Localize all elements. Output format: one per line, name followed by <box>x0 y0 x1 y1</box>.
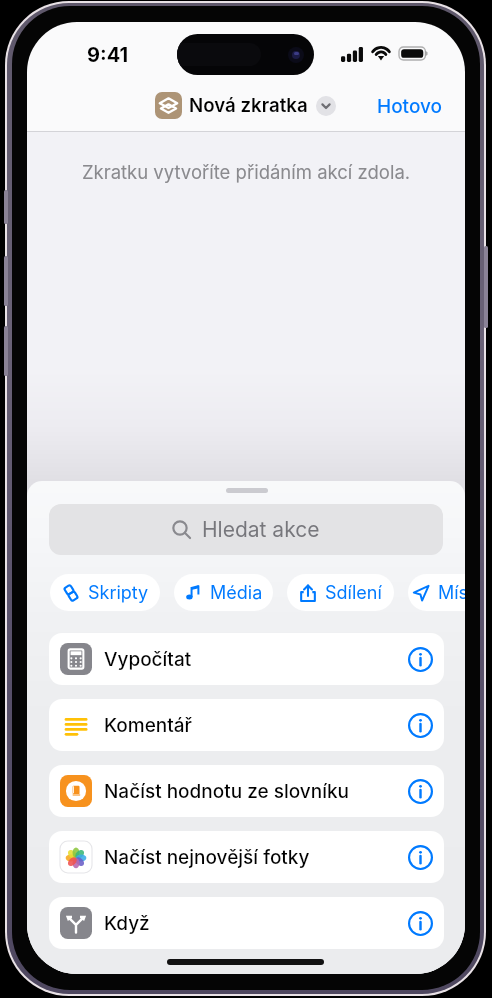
button[interactable]: Možnosti zkratky <box>316 96 336 116</box>
staticText: Sdílení <box>325 582 382 604</box>
staticText: Skripty <box>88 582 149 604</box>
button[interactable]: Vypočítat <box>49 633 444 685</box>
button[interactable]: Informace <box>400 705 440 745</box>
staticText: 9:41 <box>87 43 129 67</box>
staticText: Když <box>104 912 150 935</box>
button[interactable]: Informace <box>400 837 440 877</box>
button[interactable]: Informace <box>400 771 440 811</box>
button[interactable]: Načíst hodnotu ze slovníku <box>49 765 444 817</box>
button[interactable]: Komentář <box>49 699 444 751</box>
button[interactable]: Média <box>174 574 273 611</box>
staticText: Média <box>210 582 263 604</box>
staticText: Místa <box>438 582 465 604</box>
staticText: Nová zkratka <box>189 94 308 117</box>
button[interactable]: Skripty <box>50 574 160 611</box>
staticText: Hotovo <box>377 95 443 118</box>
staticText: Načíst hodnotu ze slovníku <box>104 780 350 803</box>
button[interactable]: Načíst nejnovější fotky <box>49 831 444 883</box>
staticText: Vypočítat <box>104 648 192 671</box>
button[interactable]: Hledat akce <box>49 504 443 555</box>
button[interactable]: Místa <box>408 574 465 611</box>
staticText: Zkratku vytvoříte přidáním akcí zdola. <box>27 161 465 183</box>
button[interactable]: Sdílení <box>287 574 394 611</box>
button[interactable]: Informace <box>400 639 440 679</box>
staticText: Komentář <box>104 714 192 737</box>
button[interactable]: Informace <box>400 903 440 943</box>
staticText: Hledat akce <box>202 517 320 542</box>
staticText: Načíst nejnovější fotky <box>104 846 310 869</box>
button[interactable]: Když <box>49 897 444 949</box>
button[interactable]: Hotovo <box>377 90 443 122</box>
